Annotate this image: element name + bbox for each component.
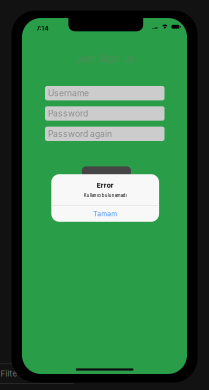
staticText: Filte <box>0 369 17 379</box>
button[interactable]: Sign Up <box>82 166 131 184</box>
staticText: Password <box>48 108 88 119</box>
staticText: User Sign Up <box>74 53 135 65</box>
button[interactable]: Username <box>45 86 164 100</box>
staticText: Sign Up <box>94 175 119 184</box>
staticText: Username <box>48 88 89 98</box>
button[interactable]: Tamam <box>51 206 159 222</box>
staticText: Tamam <box>93 210 117 218</box>
staticText: Error <box>97 181 114 189</box>
button[interactable]: Password again <box>45 127 164 141</box>
staticText: Kullanıcı bulunamadı <box>84 193 127 198</box>
staticText: Password again <box>48 129 112 139</box>
staticText: 7:14 <box>37 25 49 32</box>
button[interactable]: Password <box>45 106 164 121</box>
